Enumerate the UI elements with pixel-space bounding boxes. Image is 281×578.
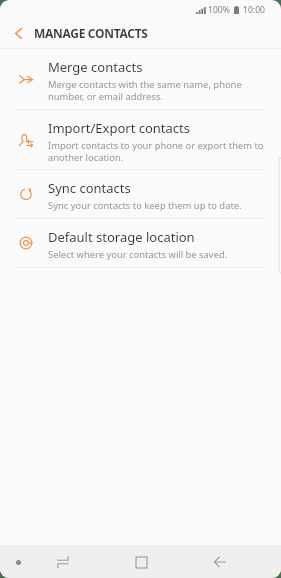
button[interactable]: Menu [6,550,30,574]
staticText: 10:00 [243,4,265,16]
button[interactable]: Home [129,550,153,574]
button[interactable]: Merge contacts [0,49,281,110]
staticText: Sync your contacts to keep them up to da… [48,199,242,212]
button[interactable]: Import/Export contacts [0,110,281,170]
button[interactable]: Default storage location [0,219,281,268]
staticText: MANAGE CONTACTS [34,25,148,41]
staticText: 100% [208,4,230,16]
staticText: Import contacts to your phone or export … [48,139,265,164]
staticText: Merge contacts with the same name, phone… [48,78,265,103]
staticText: Import/Export contacts [48,119,191,137]
button[interactable]: Sync contacts [0,170,281,219]
staticText: Default storage location [48,228,195,246]
button[interactable]: Back [5,20,32,47]
button[interactable]: Back [208,550,232,574]
staticText: Merge contacts [48,58,143,76]
button[interactable]: Recents [51,550,75,574]
staticText: Sync contacts [48,179,131,197]
staticText: Select where your contacts will be saved… [48,248,228,261]
